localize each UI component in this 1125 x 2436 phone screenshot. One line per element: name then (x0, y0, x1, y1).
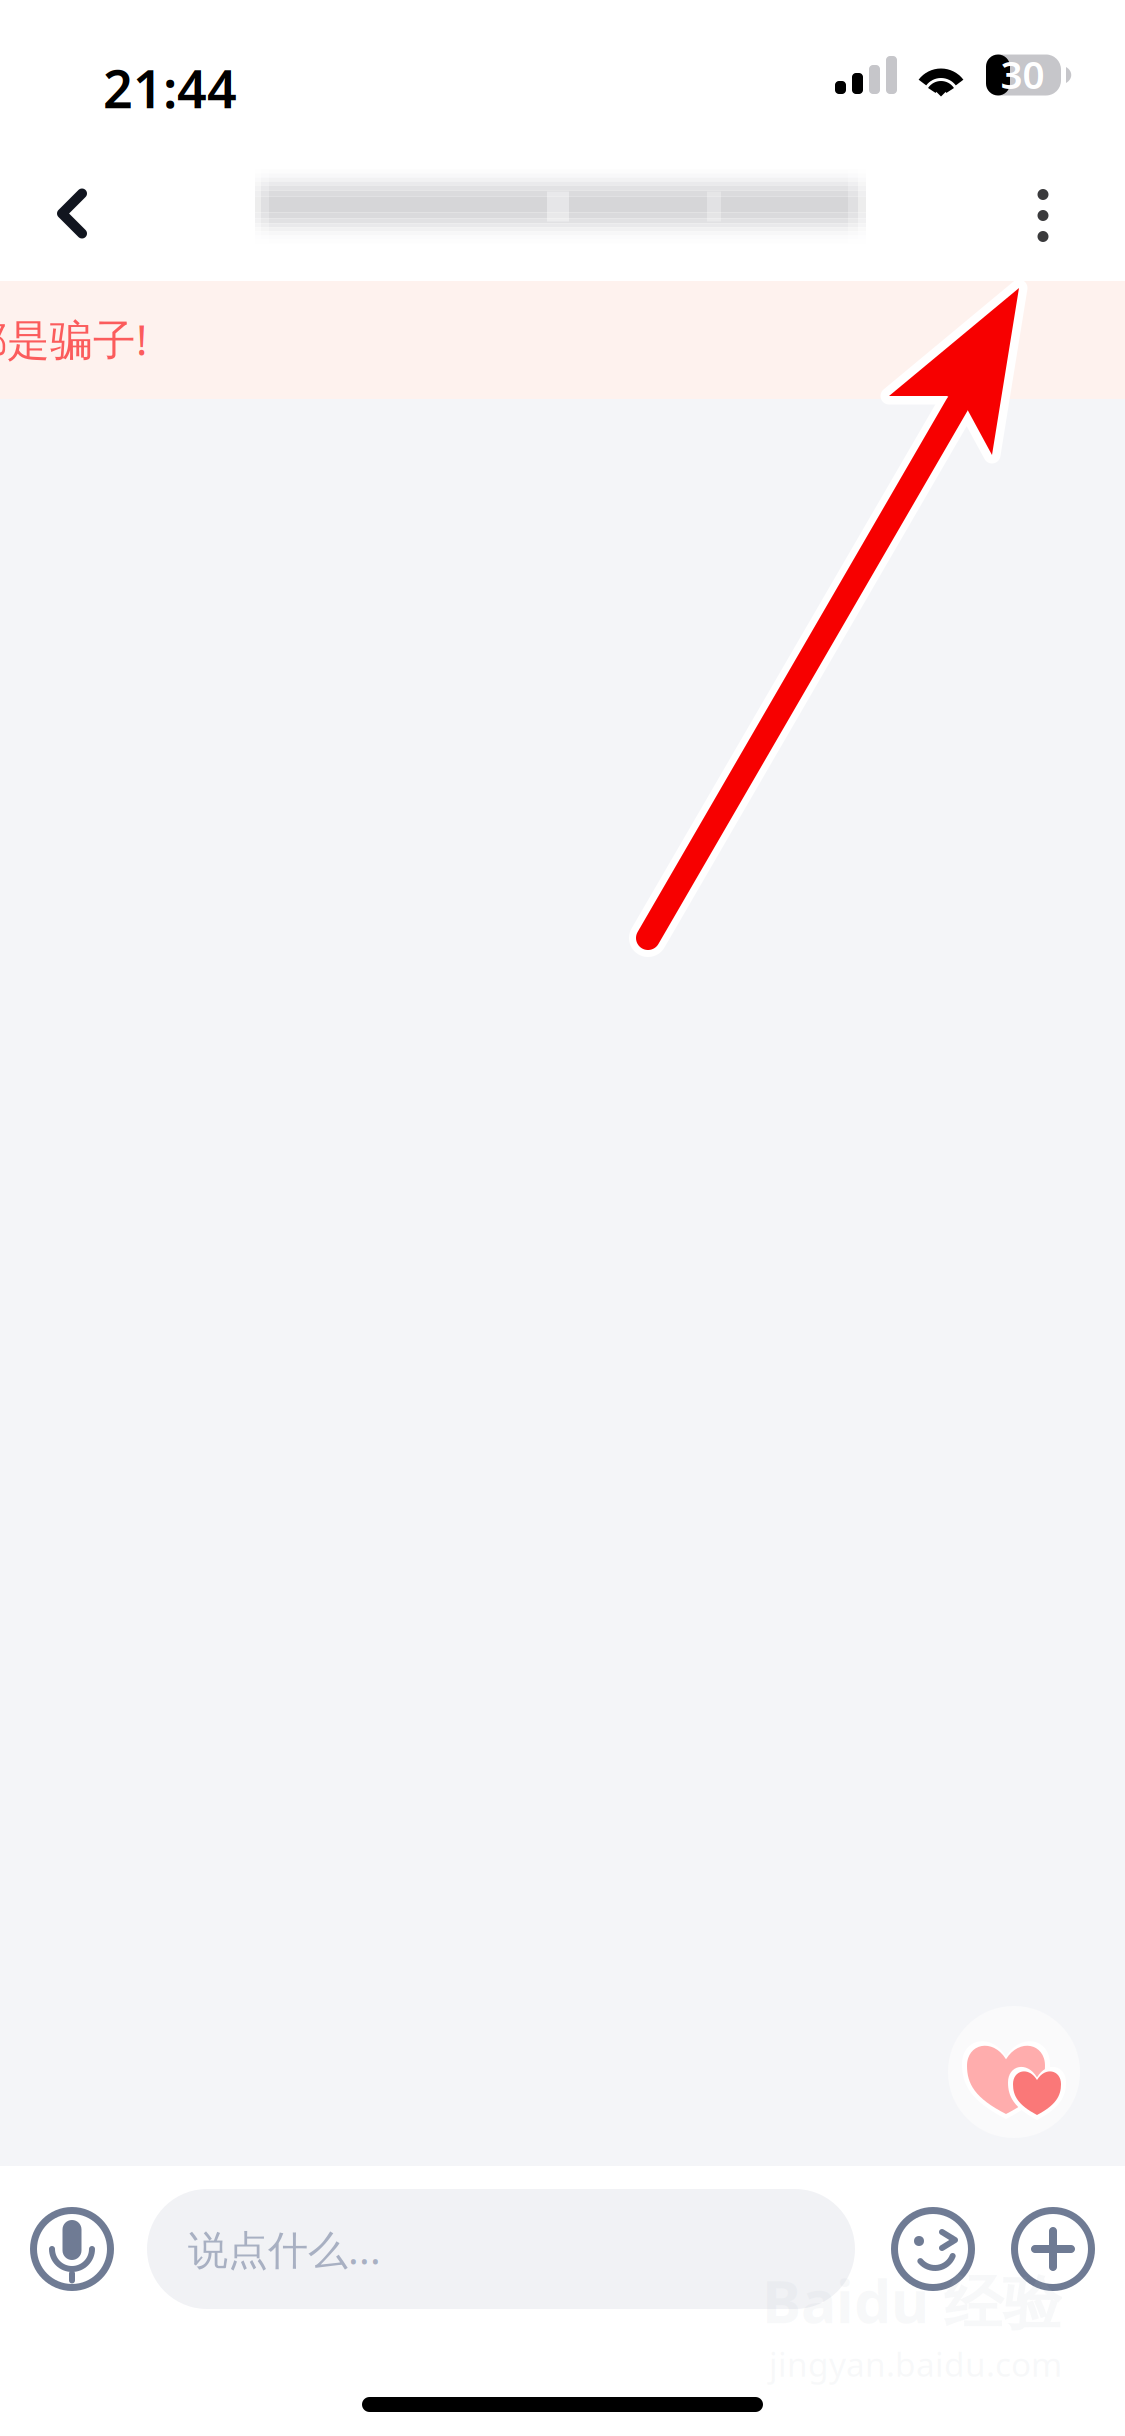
button[interactable]: Back (0, 156, 137, 274)
staticText: 21:44 (103, 53, 237, 123)
button[interactable]: More options (991, 156, 1095, 274)
staticText: 都是骗子! (0, 311, 147, 367)
button[interactable]: Hold to talk (30, 2207, 114, 2291)
button[interactable]: Emoji (891, 2207, 975, 2291)
button[interactable]: Likes (948, 2006, 1080, 2138)
staticText: 30 (1000, 48, 1044, 100)
button[interactable]: 说点什么... (147, 2189, 855, 2309)
staticText: 说点什么... (188, 2222, 381, 2275)
button[interactable]: More (1011, 2207, 1095, 2291)
staticText: Baidu 经验 (762, 2261, 1062, 2340)
